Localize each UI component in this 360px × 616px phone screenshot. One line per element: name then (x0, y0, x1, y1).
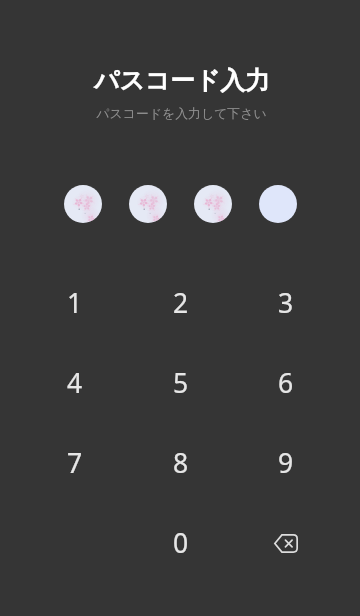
button[interactable]: 0 (128, 503, 233, 583)
staticText: 5 (173, 365, 189, 401)
staticText: 0 (173, 525, 189, 561)
staticText: パスコード入力 (94, 65, 270, 96)
button[interactable]: 3 (233, 263, 338, 343)
button[interactable]: Delete (233, 503, 338, 583)
button[interactable]: 2 (128, 263, 233, 343)
button[interactable]: 6 (233, 343, 338, 423)
staticText: 7 (67, 445, 83, 481)
staticText: 3 (278, 285, 294, 321)
staticText: 2 (173, 285, 189, 321)
button[interactable]: 1 (22, 263, 128, 343)
staticText: 4 (67, 365, 83, 401)
button[interactable]: 4 (22, 343, 128, 423)
staticText: 9 (278, 445, 294, 481)
staticText: 8 (173, 445, 189, 481)
staticText: 6 (278, 365, 294, 401)
button[interactable]: 9 (233, 423, 338, 503)
staticText: 1 (67, 285, 83, 321)
button[interactable]: 8 (128, 423, 233, 503)
staticText: パスコードを入力して下さい (96, 106, 267, 122)
button[interactable]: 7 (22, 423, 128, 503)
button[interactable]: 5 (128, 343, 233, 423)
